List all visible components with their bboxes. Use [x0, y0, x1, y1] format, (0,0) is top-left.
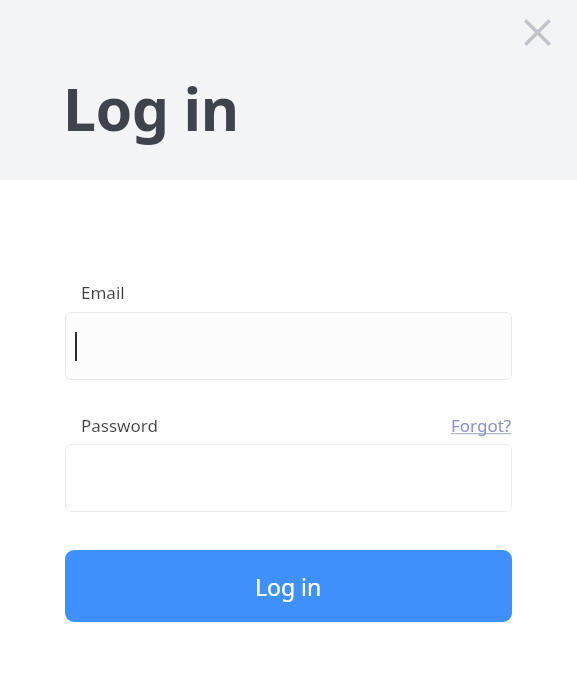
button[interactable]: [65, 312, 512, 380]
button[interactable]: Log in: [65, 550, 512, 622]
staticText: Log in: [63, 68, 239, 148]
staticText: Email: [81, 281, 125, 304]
staticText: Forgot?: [451, 414, 512, 437]
button[interactable]: Forgot?: [451, 414, 512, 437]
staticText: Log in: [255, 571, 322, 602]
button[interactable]: [65, 444, 512, 512]
button[interactable]: Close: [515, 10, 560, 55]
staticText: Password: [81, 414, 158, 437]
